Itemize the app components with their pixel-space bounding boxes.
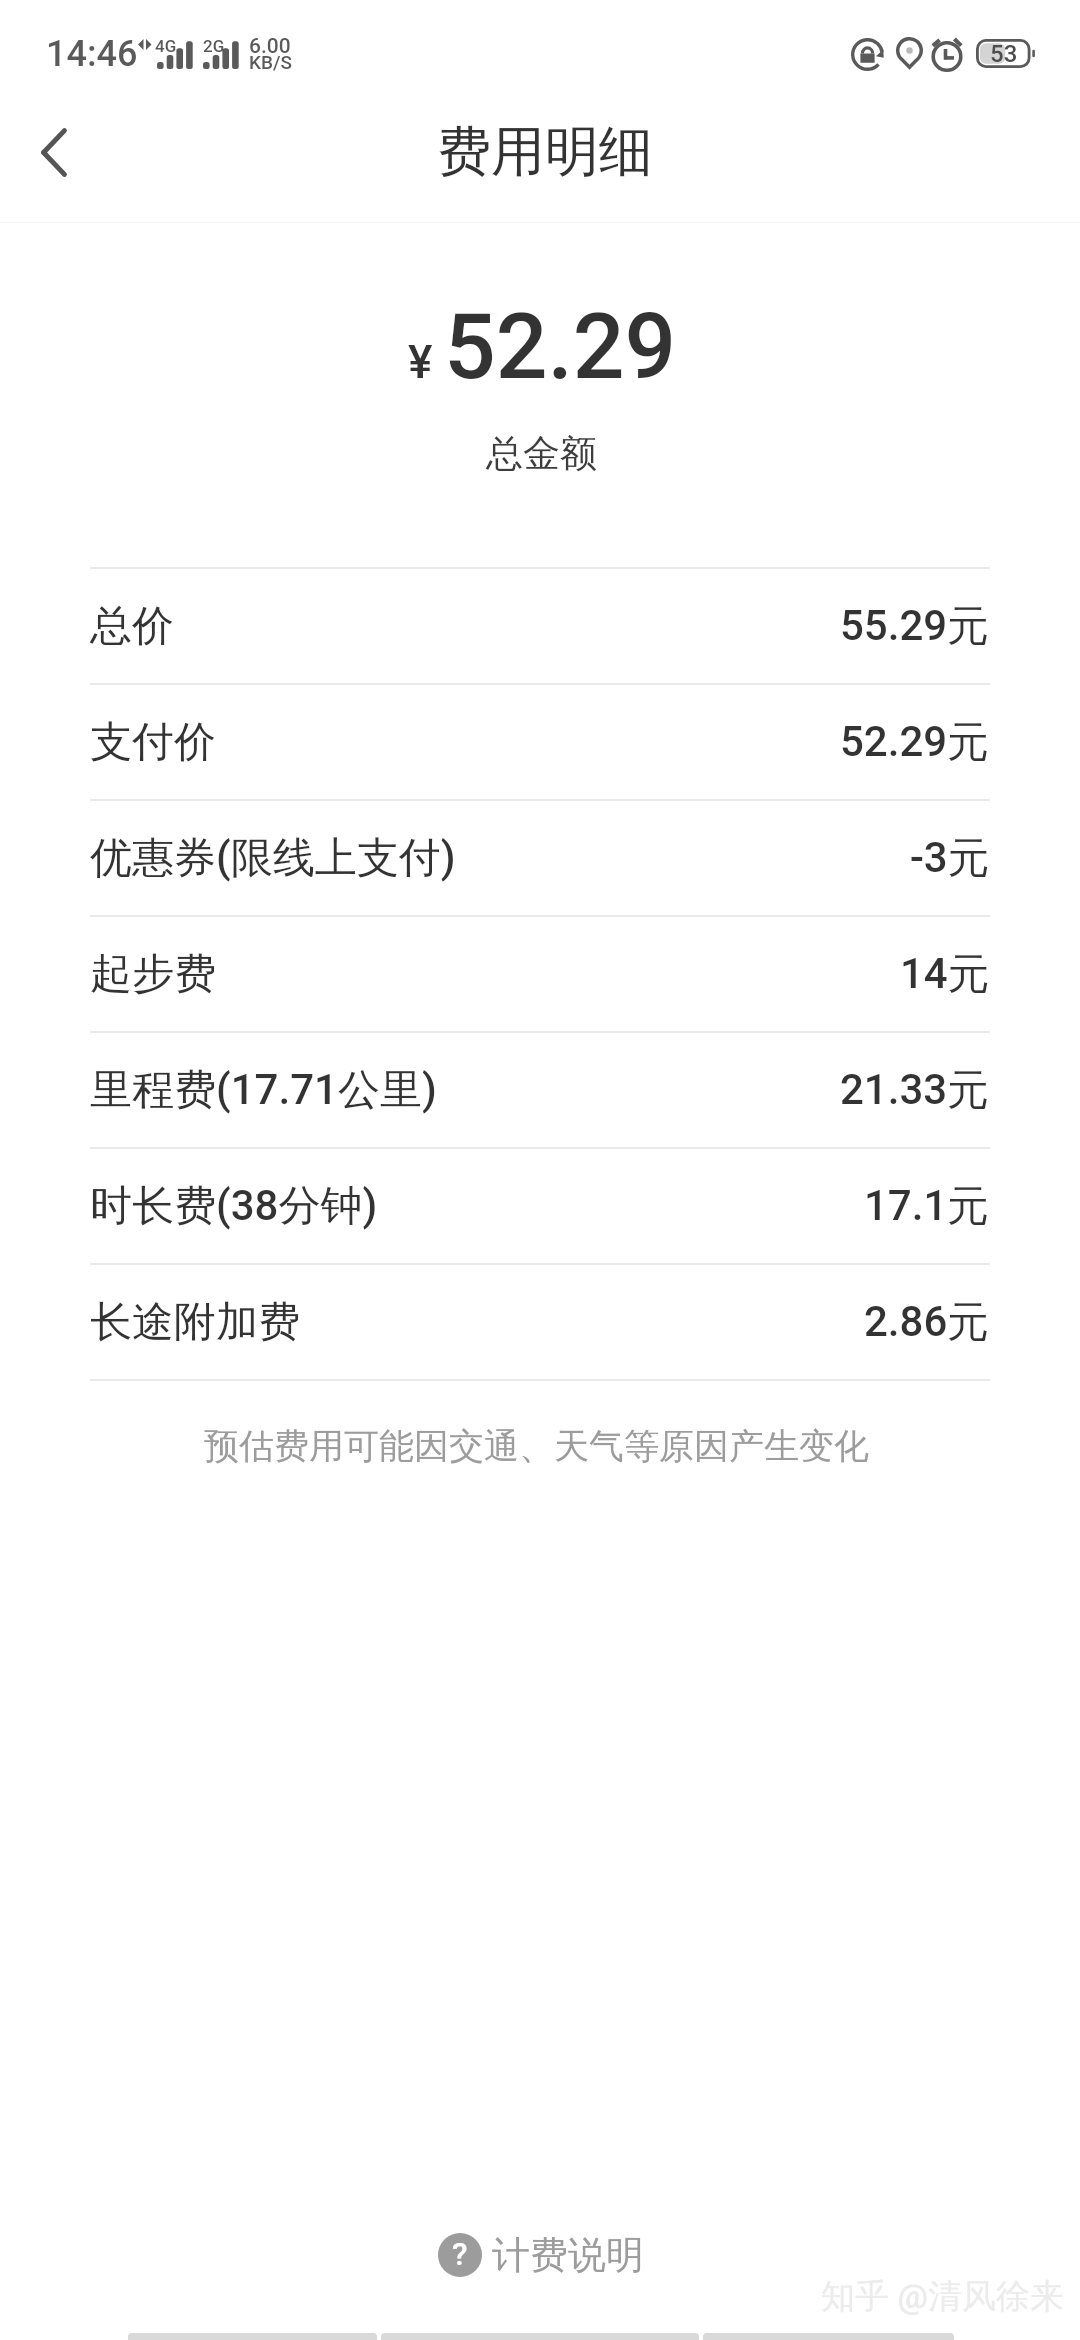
staticText: 6.00 <box>249 34 291 59</box>
staticText: 总金额 <box>486 430 597 477</box>
staticText: -3元 <box>910 832 990 885</box>
button[interactable]: 长途附加费 <box>90 1265 990 1379</box>
staticText: 2.86元 <box>864 1296 990 1349</box>
staticText: 费用明细 <box>437 118 653 186</box>
button[interactable]: 总价 <box>90 569 990 683</box>
staticText: 总价 <box>90 600 174 653</box>
staticText: ? <box>452 2235 468 2273</box>
staticText: 4G <box>155 36 177 56</box>
staticText: 计费说明 <box>492 2231 644 2279</box>
other: Alarm <box>932 37 962 71</box>
button[interactable]: 里程费(17.71公里) <box>90 1033 990 1147</box>
staticText: KB/S <box>249 51 292 73</box>
button[interactable]: Back <box>0 98 108 206</box>
staticText: 里程费(17.71公里) <box>90 1064 437 1117</box>
staticText: 17.1元 <box>864 1180 990 1233</box>
staticText: 长途附加费 <box>90 1296 300 1349</box>
staticText: 支付价 <box>90 716 216 769</box>
button[interactable]: 支付价 <box>90 685 990 799</box>
button[interactable]: ? <box>438 2231 644 2279</box>
staticText: 2G <box>203 36 225 56</box>
staticText: 起步费 <box>90 948 216 1001</box>
button[interactable]: 时长费(38分钟) <box>90 1149 990 1263</box>
staticText: 时长费(38分钟) <box>90 1180 378 1233</box>
button[interactable]: 优惠券(限线上支付) <box>90 801 990 915</box>
other: Location <box>896 37 923 69</box>
staticText: 55.29元 <box>840 600 990 653</box>
staticText: 52.29元 <box>840 716 990 769</box>
staticText: 知乎 @清风徐来 <box>821 2275 1064 2318</box>
staticText: 14元 <box>900 948 990 1001</box>
staticText: 21.33元 <box>840 1064 990 1117</box>
staticText: ¥ <box>408 335 433 389</box>
staticText: 53 <box>990 40 1018 68</box>
staticText: 52.29 <box>444 294 677 401</box>
staticText: 预估费用可能因交通、天气等原因产生变化 <box>204 1424 869 1468</box>
button[interactable]: 起步费 <box>90 917 990 1031</box>
staticText: 14:46 <box>46 33 138 75</box>
other: Rotation lock <box>851 38 884 71</box>
staticText: 优惠券(限线上支付) <box>90 832 456 885</box>
